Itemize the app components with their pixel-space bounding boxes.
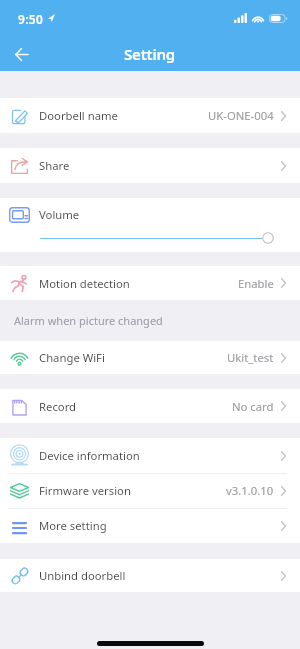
staticText: UK-ONE-004 [208,108,274,123]
staticText: Ukit_test [227,350,274,365]
staticText: Volume [39,207,80,222]
button[interactable]: Unbind doorbell [0,559,300,592]
button[interactable]: Motion detection [0,266,300,300]
staticText: Alarm when picture changed [14,313,163,328]
staticText: 9:50 [18,11,44,27]
button[interactable]: More setting [0,508,300,543]
staticText: More setting [39,518,107,533]
staticText: Device information [39,448,140,463]
staticText: Doorbell name [39,108,118,123]
staticText: v3.1.0.10 [226,483,274,498]
staticText: Share [39,158,70,173]
staticText: Change WiFi [39,350,105,365]
button[interactable]: Volume level [40,231,274,245]
staticText: Record [39,399,77,414]
button[interactable]: Share [0,148,300,183]
staticText: Firmware version [39,483,131,498]
staticText: No card [232,399,274,414]
staticText: Enable [238,276,274,291]
staticText: Unbind doorbell [39,568,126,583]
button[interactable]: Firmware version [0,473,300,508]
button[interactable]: Device information [0,438,300,473]
button[interactable]: Volume [9,198,300,231]
button[interactable]: Doorbell name [0,98,300,133]
button[interactable]: Change WiFi [0,341,300,374]
staticText: Setting [124,44,176,64]
button[interactable]: Back [6,39,36,69]
button[interactable]: Record [0,389,300,423]
staticText: Motion detection [39,276,130,291]
